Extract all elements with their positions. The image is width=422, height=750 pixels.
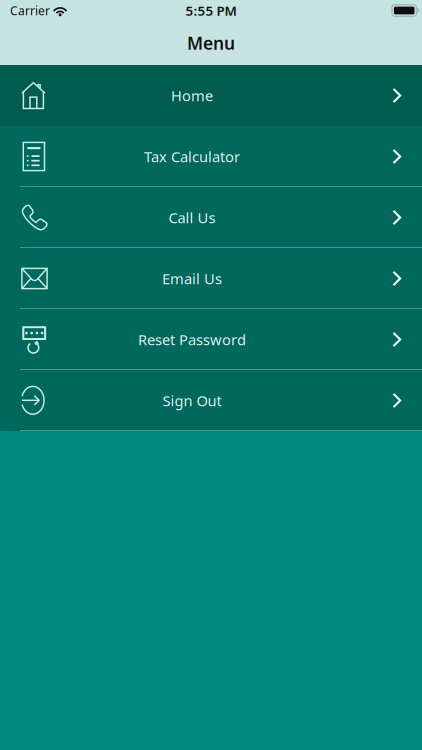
staticText: Reset Password [138, 330, 246, 349]
button[interactable]: Home [0, 65, 422, 126]
button[interactable]: Tax Calculator [0, 126, 422, 187]
staticText: Call Us [168, 208, 215, 227]
staticText: Menu [187, 31, 235, 54]
button[interactable]: Reset Password [0, 309, 422, 370]
button[interactable]: Call Us [0, 187, 422, 248]
button[interactable]: Email Us [0, 248, 422, 309]
staticText: 5:55 PM [185, 2, 236, 19]
staticText: Tax Calculator [144, 147, 240, 166]
staticText: Home [171, 86, 213, 105]
staticText: Carrier [10, 2, 50, 18]
staticText: Sign Out [162, 391, 221, 410]
button[interactable]: Sign Out [0, 370, 422, 431]
staticText: Email Us [162, 269, 222, 288]
